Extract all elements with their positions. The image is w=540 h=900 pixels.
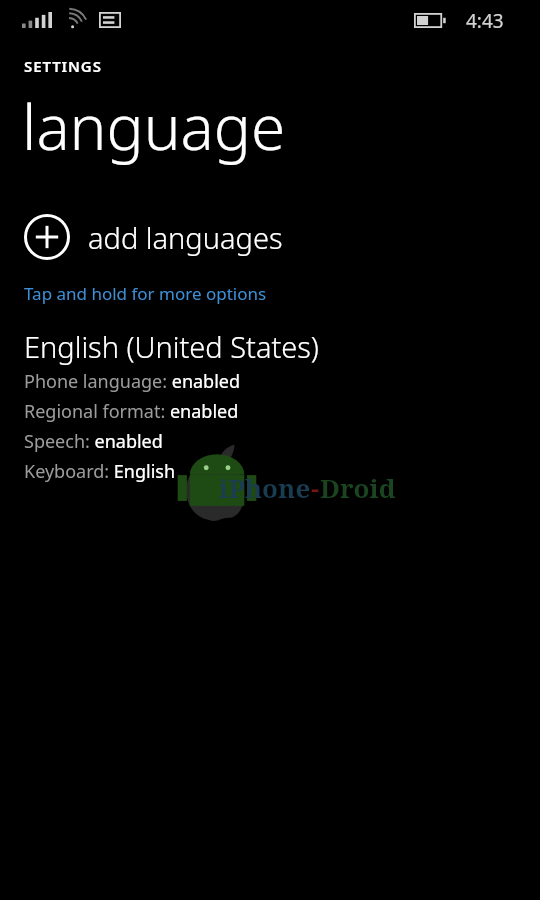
staticText: 4:43 (466, 8, 504, 34)
staticText: SETTINGS (24, 56, 102, 76)
staticText: English (United States) (24, 327, 319, 366)
staticText: Speech: enabled (24, 429, 163, 454)
button[interactable]: add languages (0, 210, 540, 264)
staticText: - (311, 470, 320, 505)
staticText: add languages (88, 218, 283, 257)
staticText: Tap and hold for more options (24, 282, 267, 305)
staticText: Keyboard: English (24, 459, 176, 484)
button[interactable]: English (United States) (0, 327, 540, 484)
staticText: iPhone (219, 470, 311, 505)
staticText: language (22, 84, 286, 168)
staticText: Droid (320, 470, 396, 505)
staticText: Phone language: enabled (24, 369, 241, 394)
staticText: Regional format: enabled (24, 399, 239, 424)
